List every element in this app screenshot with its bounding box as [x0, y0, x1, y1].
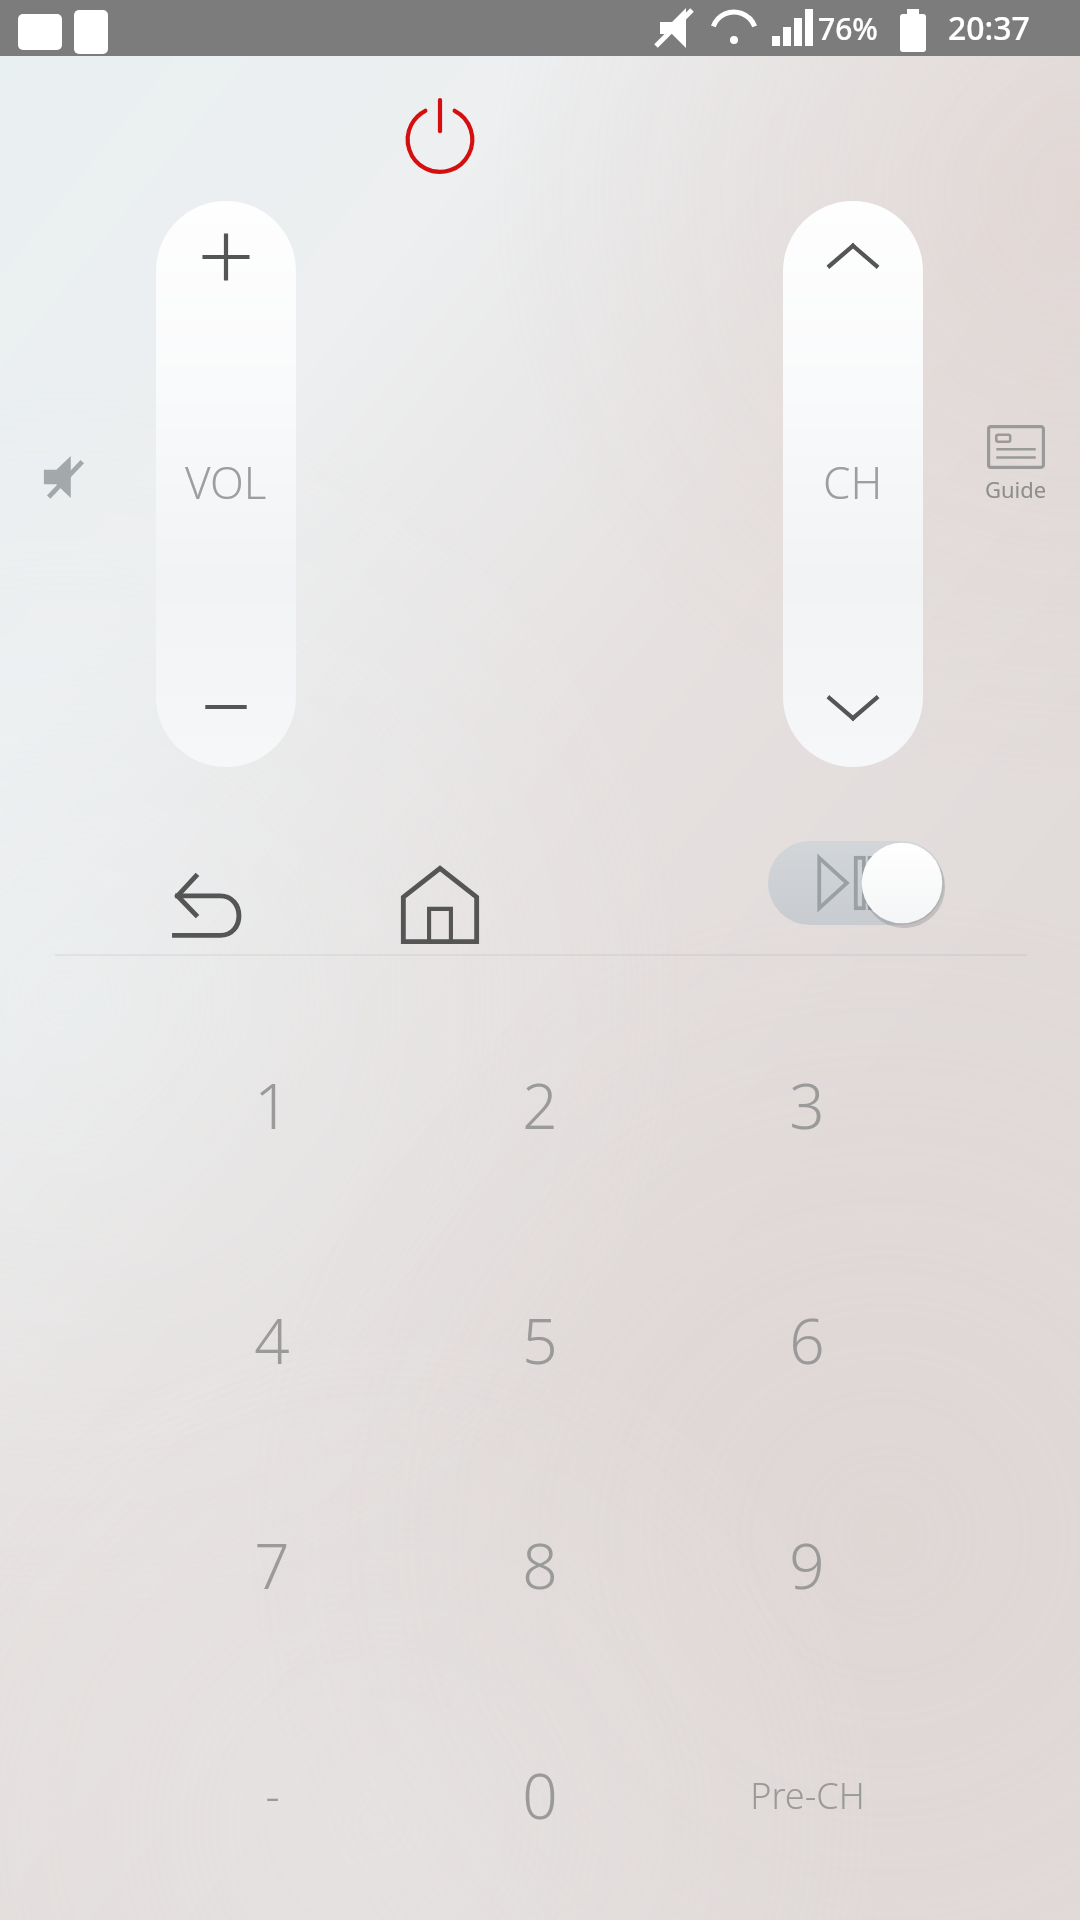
staticText: 1 — [254, 1063, 290, 1147]
button[interactable]: Guide — [964, 425, 1068, 504]
staticText: 7 — [254, 1523, 290, 1607]
button[interactable]: CH — [783, 201, 923, 767]
button[interactable]: Pre-CH — [689, 1723, 925, 1867]
staticText: 76% — [818, 8, 878, 49]
staticText: Guide — [985, 474, 1047, 504]
staticText: 6 — [789, 1298, 825, 1382]
button[interactable]: 6 — [689, 1268, 925, 1412]
button[interactable]: 4 — [154, 1268, 390, 1412]
button[interactable]: Power — [381, 76, 499, 194]
staticText: 0 — [522, 1753, 558, 1837]
staticText: 20:37 — [948, 6, 1030, 50]
staticText: 8 — [522, 1523, 558, 1607]
button[interactable]: Back — [144, 838, 278, 972]
staticText: 9 — [789, 1523, 825, 1607]
staticText: Pre-CH — [750, 1771, 865, 1820]
staticText: 4 — [254, 1298, 290, 1382]
staticText: CH — [823, 452, 883, 512]
button[interactable]: 7 — [154, 1493, 390, 1637]
button[interactable]: Home — [373, 838, 507, 972]
button[interactable]: Play Pause — [768, 841, 944, 925]
button[interactable]: 0 — [422, 1723, 658, 1867]
staticText: 3 — [789, 1063, 825, 1147]
button[interactable]: 9 — [689, 1493, 925, 1637]
button[interactable]: 1 — [154, 1033, 390, 1177]
button[interactable]: VOL — [156, 201, 296, 767]
staticText: 5 — [522, 1298, 558, 1382]
button[interactable]: Mute — [18, 430, 112, 524]
staticText: - — [265, 1765, 280, 1825]
button[interactable]: 8 — [422, 1493, 658, 1637]
button[interactable]: 3 — [689, 1033, 925, 1177]
staticText: 2 — [522, 1063, 558, 1147]
staticText: VOL — [185, 452, 267, 512]
button[interactable]: 2 — [422, 1033, 658, 1177]
button[interactable]: 5 — [422, 1268, 658, 1412]
